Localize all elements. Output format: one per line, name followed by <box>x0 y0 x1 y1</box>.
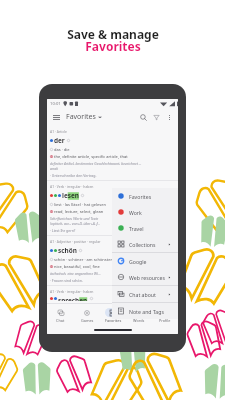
button[interactable]: Search <box>137 111 150 124</box>
staticText: A1 · Verb · irregular · haben <box>50 289 94 294</box>
staticText: weak <box>50 166 58 171</box>
staticText: Favorites <box>66 112 96 122</box>
staticText: 10:01 <box>50 101 61 107</box>
button[interactable]: A1 · Verb · irregular · haben <box>47 286 178 303</box>
staticText: A1 · Article <box>50 129 67 134</box>
button[interactable]: Favorites <box>100 304 126 326</box>
staticText: (optisch, acc., von+D, über+A, f… <box>50 221 101 226</box>
button[interactable]: Games <box>74 304 100 326</box>
button[interactable]: Google <box>112 253 178 269</box>
button[interactable]: Words <box>126 304 152 326</box>
staticText: das · die <box>54 147 70 152</box>
staticText: · Liest Ihr gern? <box>50 228 76 233</box>
staticText: Chat <box>56 318 65 323</box>
staticText: Google <box>129 258 147 265</box>
staticText: read, lecture, select, glean <box>54 209 104 214</box>
button[interactable]: Chat <box>47 304 74 326</box>
staticText: Collections <box>129 241 156 248</box>
staticText: der <box>54 136 65 145</box>
button[interactable]: Open navigation menu <box>50 111 63 124</box>
button[interactable]: Collections <box>112 236 178 252</box>
staticText: ästhetisch, eine angenehme Wi… <box>50 271 101 276</box>
staticText: Note and Tags <box>129 308 164 315</box>
button[interactable]: Favorites <box>66 112 102 122</box>
staticText: the, definite article, specific article,… <box>54 154 128 159</box>
staticText: Favorites <box>105 318 122 323</box>
staticText: Chat about <box>129 291 156 298</box>
button[interactable]: Travel <box>112 220 178 236</box>
staticText: schön <box>58 246 77 255</box>
button[interactable]: Web resources <box>112 269 178 285</box>
button[interactable]: Note and Tags <box>112 303 178 319</box>
button[interactable]: Favorites <box>112 188 178 204</box>
button[interactable]: A1 · Adjective · positive · regular <box>47 236 178 285</box>
button[interactable]: Filter <box>150 111 163 124</box>
staticText: Web resources <box>129 274 165 281</box>
staticText: · Frauen sind schön. <box>50 278 83 283</box>
staticText: Games <box>81 318 94 323</box>
button[interactable]: A1 · Article <box>47 126 178 180</box>
staticText: A1 · Adjective · positive · regular <box>50 239 101 244</box>
staticText: liest · las (läse) · hat gelesen <box>54 202 106 207</box>
button[interactable]: Profile <box>152 304 178 326</box>
staticText: Save & manage <box>67 26 159 42</box>
staticText: Work <box>129 209 142 216</box>
staticText: Profile <box>159 318 171 323</box>
staticText: Travel <box>129 225 144 232</box>
staticText: · Unterschreibe den Vertrag. <box>50 173 97 178</box>
staticText: nice, beautiful, cool, fine <box>54 264 100 269</box>
staticText: lesen <box>62 191 79 200</box>
staticText: Favorites <box>85 38 141 54</box>
staticText: sprechen <box>58 296 88 301</box>
button[interactable]: More options <box>163 111 176 124</box>
button[interactable]: Work <box>112 204 178 220</box>
staticText: schön · schöner · am schönsten <box>54 257 113 262</box>
staticText: Words <box>133 318 145 323</box>
button[interactable]: Chat about <box>112 286 178 302</box>
button[interactable]: A1 · Verb · irregular · haben <box>47 181 178 235</box>
staticText: A1 · Verb · irregular · haben <box>50 184 94 189</box>
staticText: definiter Artikel, bestimmtes Geschlecht… <box>50 161 142 166</box>
staticText: Favorites <box>129 193 152 200</box>
staticText: Schriftzeichen, Worte und Texte <box>50 216 99 221</box>
